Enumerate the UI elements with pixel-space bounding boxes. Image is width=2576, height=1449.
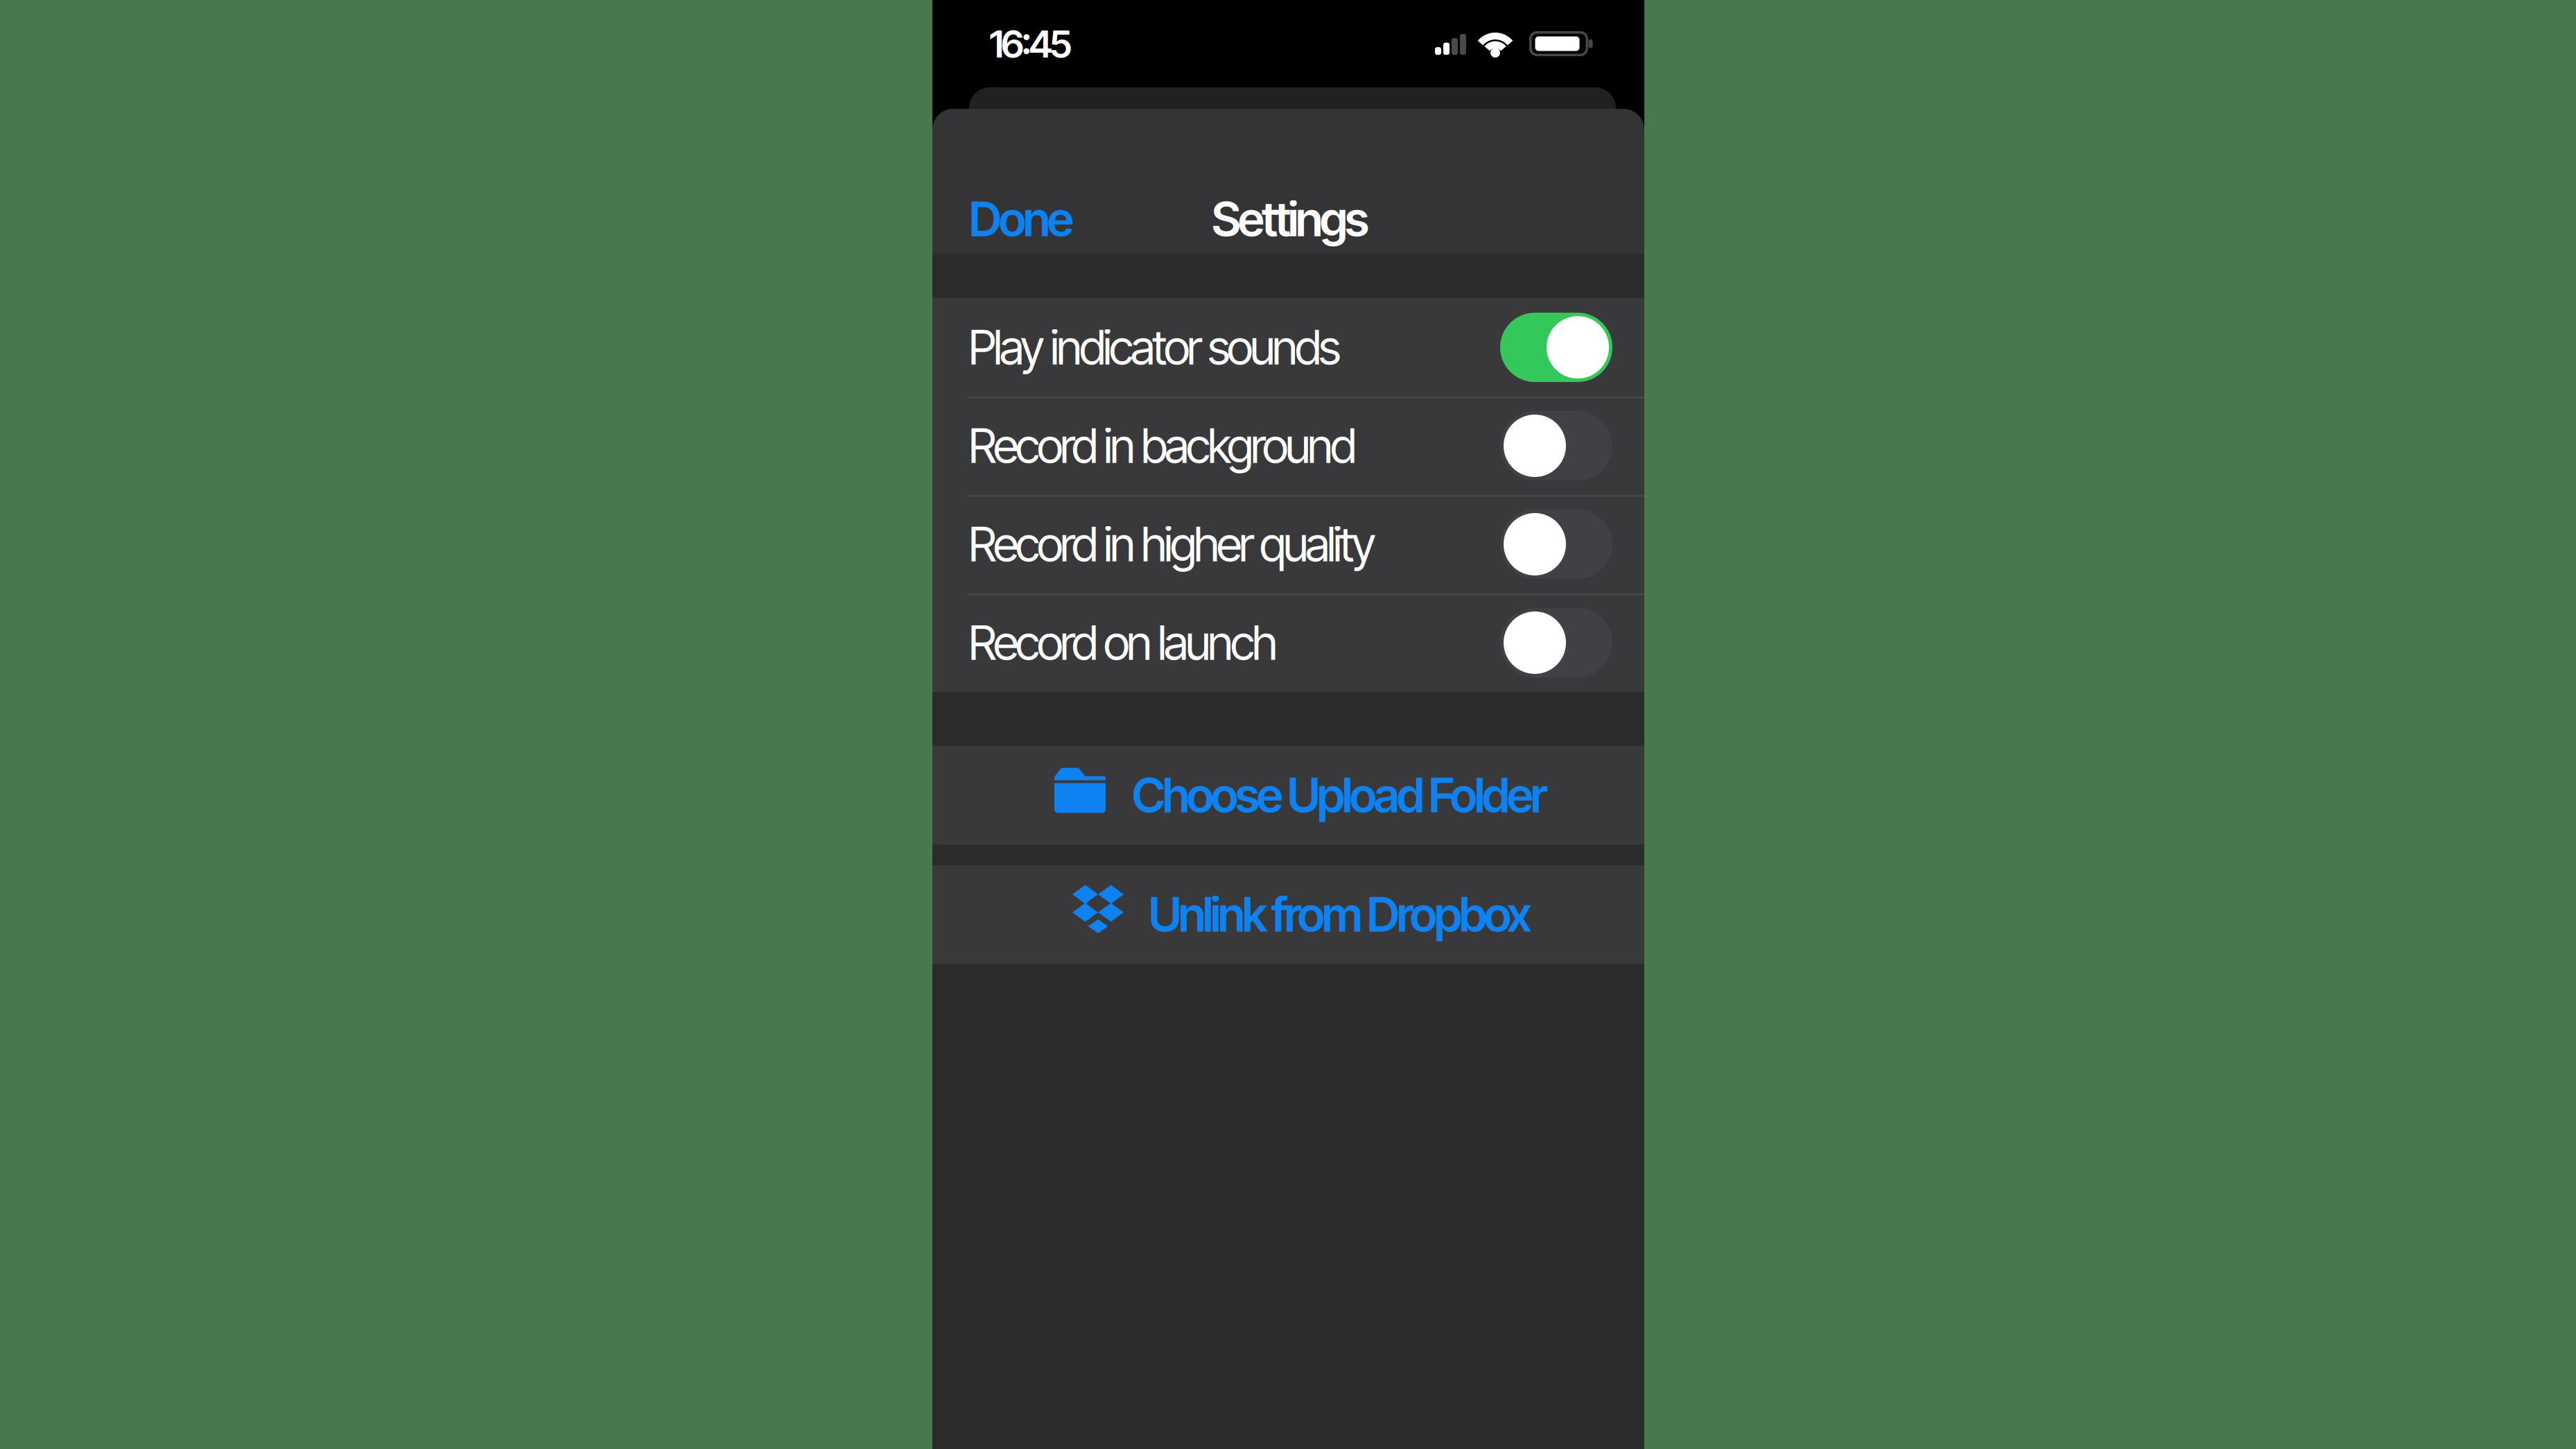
button[interactable]: Unlink from Dropbox (946, 865, 1658, 964)
staticText: Done (969, 191, 1074, 247)
staticText: Settings (1212, 191, 1369, 247)
staticText: Record in higher quality (968, 516, 1376, 572)
button[interactable]: Record on launch (932, 593, 1644, 692)
staticText: Unlink from Dropbox (1149, 887, 1532, 942)
button[interactable]: Done (969, 181, 1149, 257)
staticText: Record in background (968, 418, 1357, 474)
button[interactable]: Choose Upload Folder (945, 746, 1657, 844)
button[interactable]: Record in higher quality (932, 495, 1644, 593)
staticText: Play indicator sounds (968, 320, 1341, 375)
staticText: Record on launch (968, 615, 1278, 670)
button[interactable]: Play indicator sounds (932, 298, 1644, 397)
staticText: Choose Upload Folder (1132, 767, 1547, 823)
button[interactable]: Record in background (932, 397, 1644, 495)
staticText: 16:45 (989, 21, 1072, 66)
